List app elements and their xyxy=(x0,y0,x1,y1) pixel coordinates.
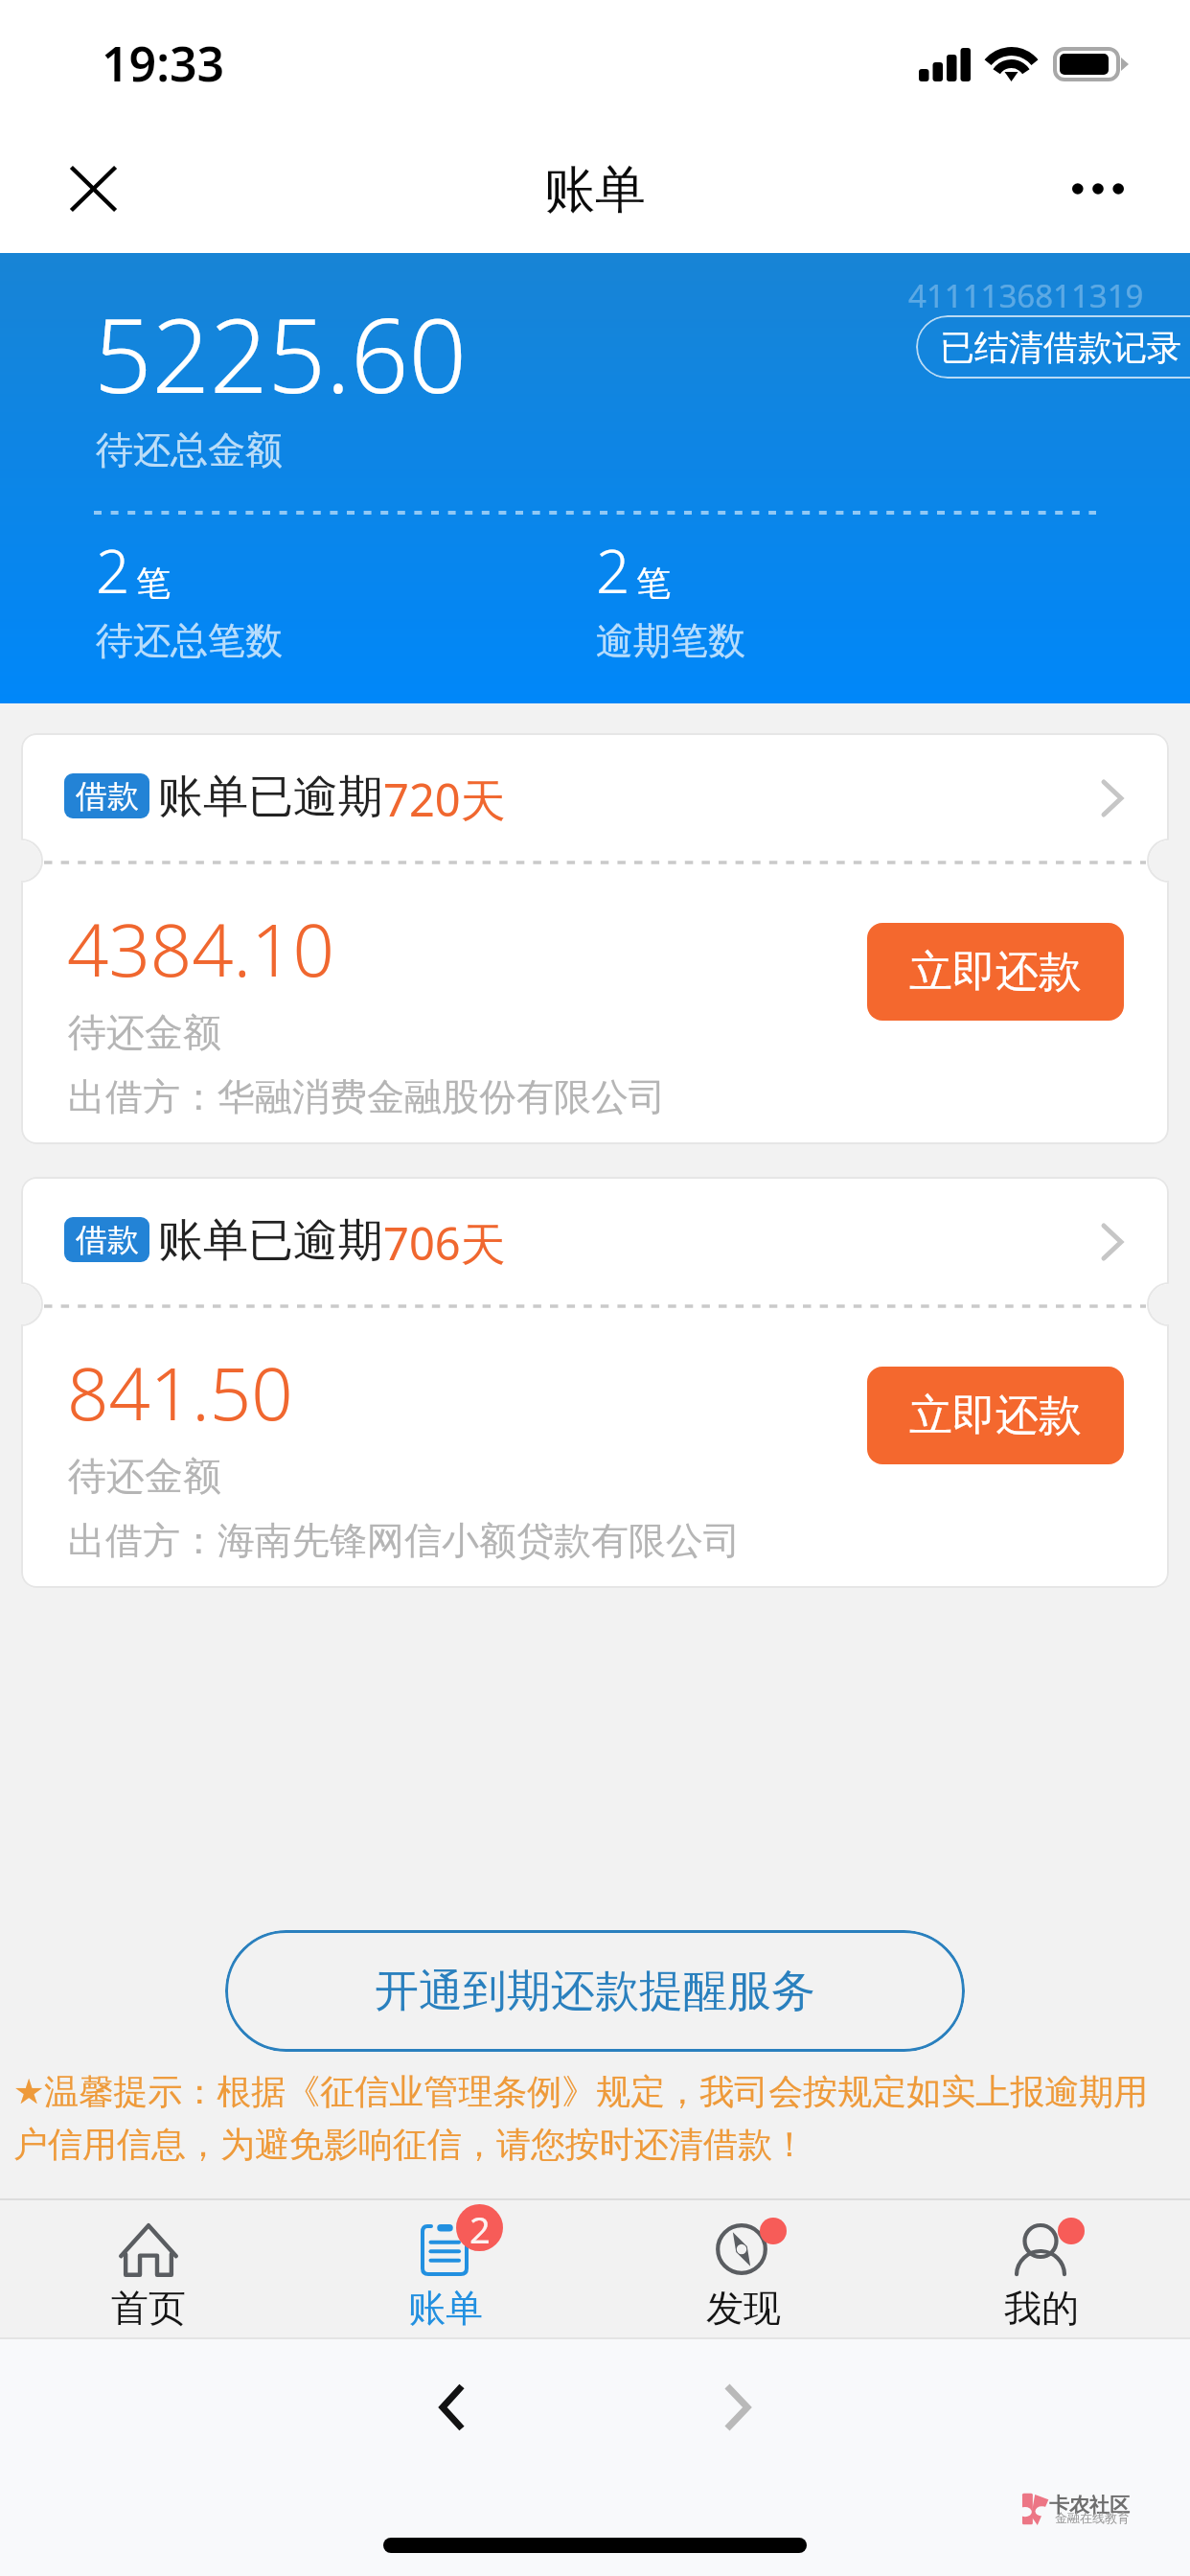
staticText: 待还总笔数 xyxy=(96,617,283,664)
staticText: 待还金额 xyxy=(68,1452,221,1500)
button[interactable]: 我的 xyxy=(892,2200,1190,2337)
staticText: 笔 xyxy=(636,562,671,605)
staticText: 发现 xyxy=(706,2285,781,2332)
staticText: 借款 xyxy=(76,1220,139,1260)
staticText: 逾期笔数 xyxy=(596,617,745,664)
button[interactable]: 立即还款 xyxy=(867,1367,1124,1464)
button[interactable]: 开通到期还款提醒服务 xyxy=(225,1930,965,2052)
staticText: 已结清借款记录 xyxy=(940,326,1181,369)
staticText: 账单已逾期 xyxy=(158,1212,383,1269)
staticText: 账单已逾期 xyxy=(158,769,383,825)
staticText: 出借方：海南先锋网信小额贷款有限公司 xyxy=(68,1517,741,1564)
button[interactable]: 前进 xyxy=(727,2386,747,2428)
staticText: 笔 xyxy=(136,562,171,605)
staticText: 19:33 xyxy=(102,31,225,96)
staticText: 借款 xyxy=(76,776,139,816)
button[interactable]: 已结清借款记录 xyxy=(916,315,1190,379)
staticText: ★温馨提示：根据《征信业管理条例》规定，我司会按规定如实上报逾期用户信用信息，为… xyxy=(13,2070,1182,2167)
button[interactable]: 关闭 xyxy=(59,155,126,222)
button[interactable]: 首页 xyxy=(0,2200,297,2337)
staticText: 立即还款 xyxy=(909,1389,1082,1443)
staticText: 待还金额 xyxy=(68,1008,221,1056)
staticText: 2 xyxy=(596,530,630,610)
staticText: 金融在线教育 xyxy=(1055,2510,1130,2525)
staticText: 首页 xyxy=(111,2285,186,2332)
staticText: 卡农社区 xyxy=(1049,2493,1130,2518)
button[interactable]: 发现 xyxy=(594,2200,892,2337)
staticText: 706天 xyxy=(383,1212,506,1274)
staticText: 720天 xyxy=(383,769,506,830)
button[interactable]: 2 xyxy=(297,2200,594,2337)
staticText: 2 xyxy=(96,530,130,610)
staticText: 4384.10 xyxy=(67,899,334,999)
staticText: 立即还款 xyxy=(909,945,1082,1000)
button[interactable]: 借款 xyxy=(21,1177,1169,1304)
staticText: 2 xyxy=(469,2204,491,2251)
staticText: 4111136811319 xyxy=(908,274,1144,317)
staticText: 开通到期还款提醒服务 xyxy=(375,1964,815,2019)
button[interactable]: 更多 xyxy=(1058,155,1138,222)
button[interactable]: 借款 xyxy=(21,733,1169,861)
staticText: 账单 xyxy=(408,2285,483,2332)
staticText: 出借方：华融消费金融股份有限公司 xyxy=(68,1073,666,1120)
button[interactable]: 后退 xyxy=(443,2386,462,2428)
staticText: 841.50 xyxy=(67,1343,293,1442)
staticText: 5225.60 xyxy=(94,285,468,423)
staticText: 我的 xyxy=(1004,2285,1079,2332)
staticText: 待还总金额 xyxy=(96,426,283,473)
staticText: 账单 xyxy=(544,158,646,222)
button[interactable]: 立即还款 xyxy=(867,923,1124,1021)
